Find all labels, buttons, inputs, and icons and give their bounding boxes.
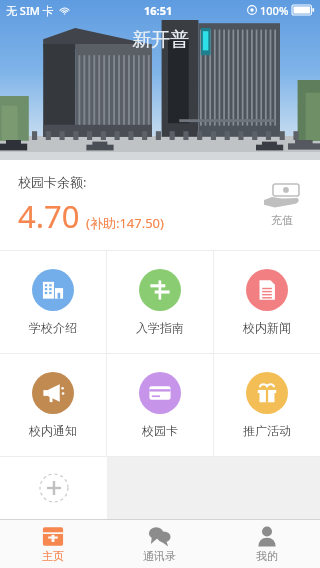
staticText: 推广活动 — [243, 423, 291, 438]
button[interactable]: 通讯录 — [106, 520, 213, 568]
button[interactable]: 校内新闻 — [214, 251, 320, 353]
button[interactable]: 校园卡 — [107, 354, 213, 456]
staticText: 校内新闻 — [243, 320, 291, 335]
staticText: 校园卡 — [142, 423, 178, 438]
staticText: 4.70 — [18, 195, 80, 237]
staticText: 校内通知 — [29, 423, 77, 438]
staticText: 无 SIM 卡 — [6, 3, 54, 18]
staticText: (补助:147.50) — [86, 214, 164, 232]
staticText: 学校介绍 — [29, 320, 77, 335]
staticText: 校园卡余额: — [18, 173, 87, 191]
button[interactable]: 我的 — [213, 520, 320, 568]
button[interactable]: 主页 — [0, 520, 106, 568]
staticText: 通讯录 — [143, 549, 176, 563]
staticText: 入学指南 — [136, 320, 184, 335]
button[interactable]: 校内通知 — [0, 354, 106, 456]
button[interactable]: 入学指南 — [107, 251, 213, 353]
staticText: 100% — [260, 3, 289, 18]
staticText: 我的 — [256, 549, 278, 563]
staticText: 主页 — [42, 549, 64, 563]
button[interactable]: 学校介绍 — [0, 251, 106, 353]
staticText: 新开普 — [132, 28, 189, 52]
button[interactable]: 添加 — [0, 457, 107, 519]
button[interactable]: 推广活动 — [214, 354, 320, 456]
staticText: 充值 — [271, 213, 293, 227]
button[interactable]: 充值 — [260, 180, 304, 231]
staticText: 16:51 — [144, 3, 173, 18]
